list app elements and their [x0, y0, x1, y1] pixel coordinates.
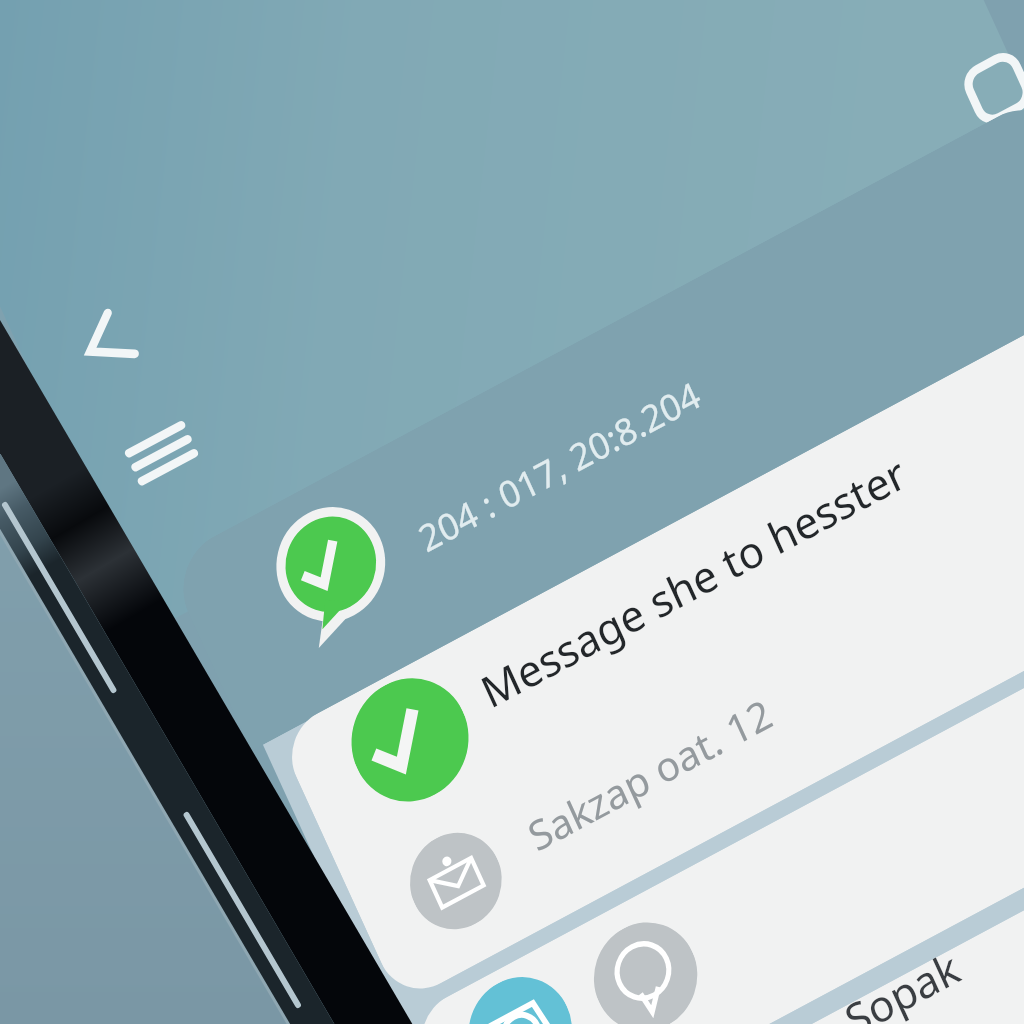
button[interactable]: Recents [940, 29, 1024, 148]
button[interactable]: 204 : 017, 20:8.204 [119, 0, 1024, 962]
staticText: 204 : 017, 20:8.204 [400, 304, 719, 629]
staticText: Sopak [831, 924, 979, 1024]
button[interactable]: Menu [106, 395, 217, 511]
button[interactable] [367, 335, 1024, 1024]
staticText: Message she to hesster [458, 342, 929, 822]
button[interactable]: Sopak [430, 514, 1024, 1024]
button[interactable]: Back [49, 287, 161, 403]
staticText: Sakzap oat. 12 [507, 629, 792, 919]
button[interactable]: Message she to hesster [211, 52, 1024, 1024]
